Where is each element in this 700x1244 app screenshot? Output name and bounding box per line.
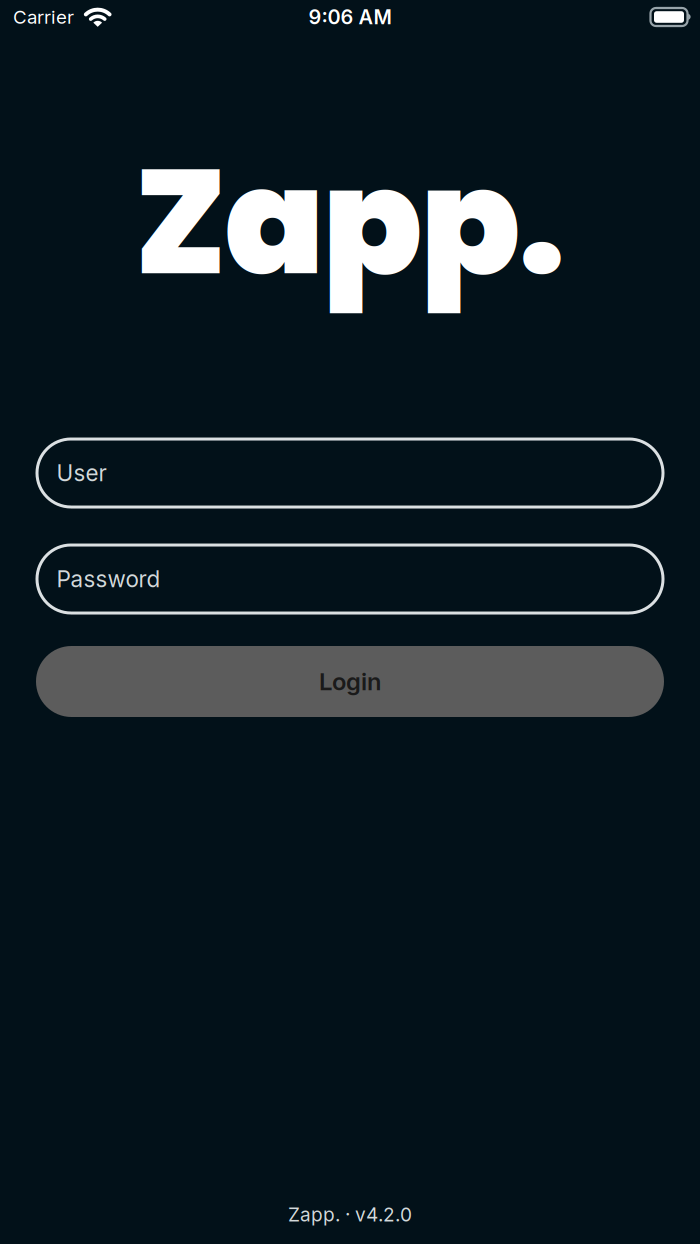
staticText: Carrier — [13, 6, 74, 28]
staticText: Zapp. · v4.2.0 — [288, 1203, 412, 1226]
staticText: Password — [56, 565, 160, 593]
staticText: Login — [319, 667, 381, 696]
staticText: 9:06 AM — [308, 5, 391, 29]
staticText: Zapp. — [134, 119, 565, 325]
button[interactable]: Password — [37, 545, 663, 613]
button[interactable]: User — [37, 439, 663, 507]
button[interactable]: Login — [36, 646, 664, 717]
staticText: User — [56, 459, 106, 487]
